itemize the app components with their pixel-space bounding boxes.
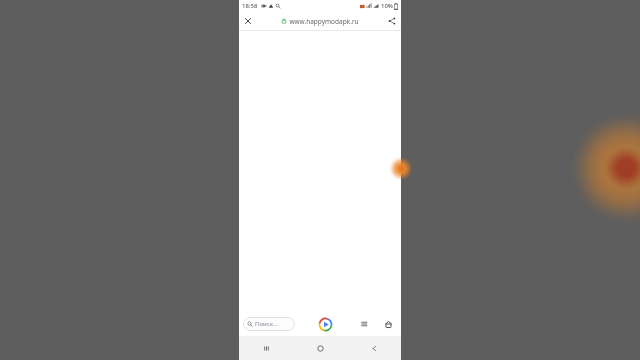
button[interactable]: Home <box>293 336 347 360</box>
staticText: 18:58 <box>242 2 258 10</box>
staticText: www.happymodapk.ru <box>289 17 359 26</box>
button[interactable]: Back <box>347 336 401 360</box>
button[interactable]: Home <box>379 315 397 333</box>
button[interactable]: Play <box>315 314 335 334</box>
staticText: 10% <box>381 2 393 10</box>
staticText: Поиск... <box>255 320 278 328</box>
button[interactable]: Tabs <box>355 315 373 333</box>
button[interactable]: Recent apps <box>239 336 293 360</box>
button[interactable]: Close <box>239 12 257 30</box>
button[interactable]: Поиск... <box>243 317 295 331</box>
button[interactable]: www.happymodapk.ru <box>257 12 383 30</box>
button[interactable]: Share <box>383 12 401 30</box>
